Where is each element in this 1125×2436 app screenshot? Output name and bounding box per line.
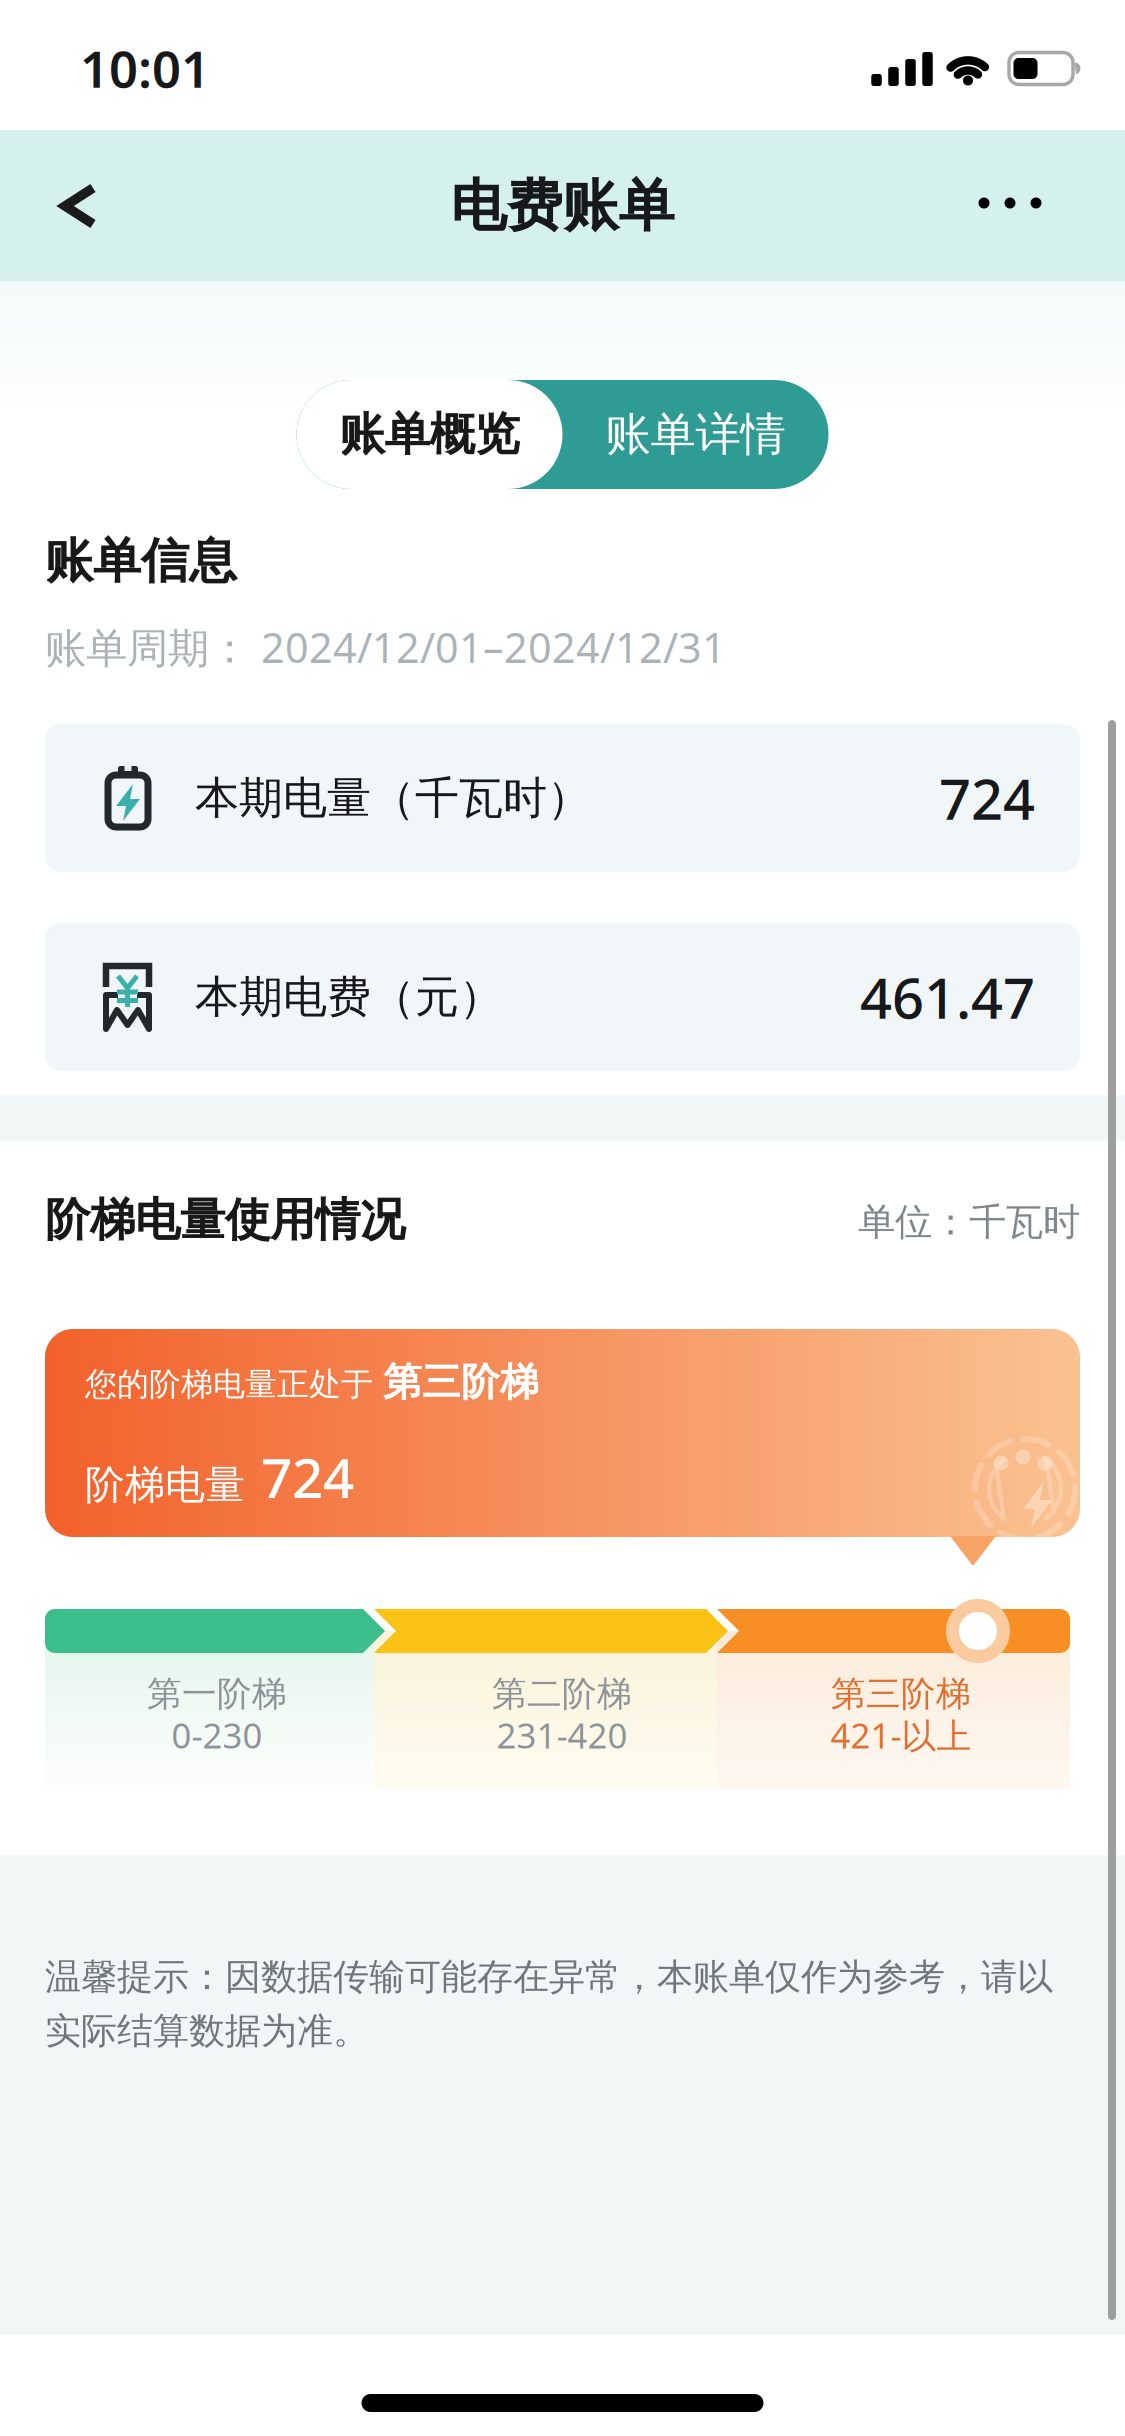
- staticText: 实际结算数据为准。: [45, 2009, 369, 2053]
- staticText: 电费账单: [450, 172, 674, 240]
- staticText: 第三阶梯: [383, 1358, 539, 1406]
- button[interactable]: [50, 176, 110, 236]
- staticText: 单位：千瓦时: [858, 1199, 1080, 1245]
- staticText: 461.47: [860, 960, 1035, 1034]
- staticText: 账单详情: [605, 407, 785, 462]
- button[interactable]: 您的阶梯电量正处于: [45, 1329, 1080, 1537]
- staticText: 10:01: [80, 34, 210, 102]
- staticText: 724: [939, 761, 1035, 835]
- staticText: 账单信息: [45, 531, 237, 590]
- staticText: 本期电量（千瓦时）: [195, 771, 591, 825]
- button[interactable]: 本期电费（元）: [45, 923, 1080, 1071]
- button[interactable]: 本期电量（千瓦时）: [45, 724, 1080, 872]
- staticText: 账单概览: [339, 407, 519, 462]
- staticText: 账单周期： 2024/12/01–2024/12/31: [45, 620, 726, 674]
- staticText: 第三阶梯: [831, 1673, 971, 1715]
- staticText: 阶梯电量使用情况: [45, 1192, 405, 1248]
- staticText: 阶梯电量: [85, 1460, 245, 1509]
- staticText: 231-420: [496, 1712, 627, 1758]
- staticText: 第一阶梯: [147, 1673, 287, 1715]
- button[interactable]: [950, 168, 1070, 238]
- staticText: 温馨提示：因数据传输可能存在异常，本账单仅作为参考，请以: [45, 1955, 1053, 1999]
- button[interactable]: 账单详情: [562, 380, 828, 489]
- staticText: 本期电费（元）: [195, 970, 503, 1024]
- staticText: 您的阶梯电量正处于: [85, 1365, 373, 1404]
- staticText: 第二阶梯: [492, 1673, 632, 1715]
- button[interactable]: 账单概览: [296, 380, 562, 489]
- staticText: 0-230: [171, 1712, 262, 1758]
- staticText: 724: [261, 1441, 354, 1513]
- staticText: 421-以上: [830, 1712, 971, 1758]
